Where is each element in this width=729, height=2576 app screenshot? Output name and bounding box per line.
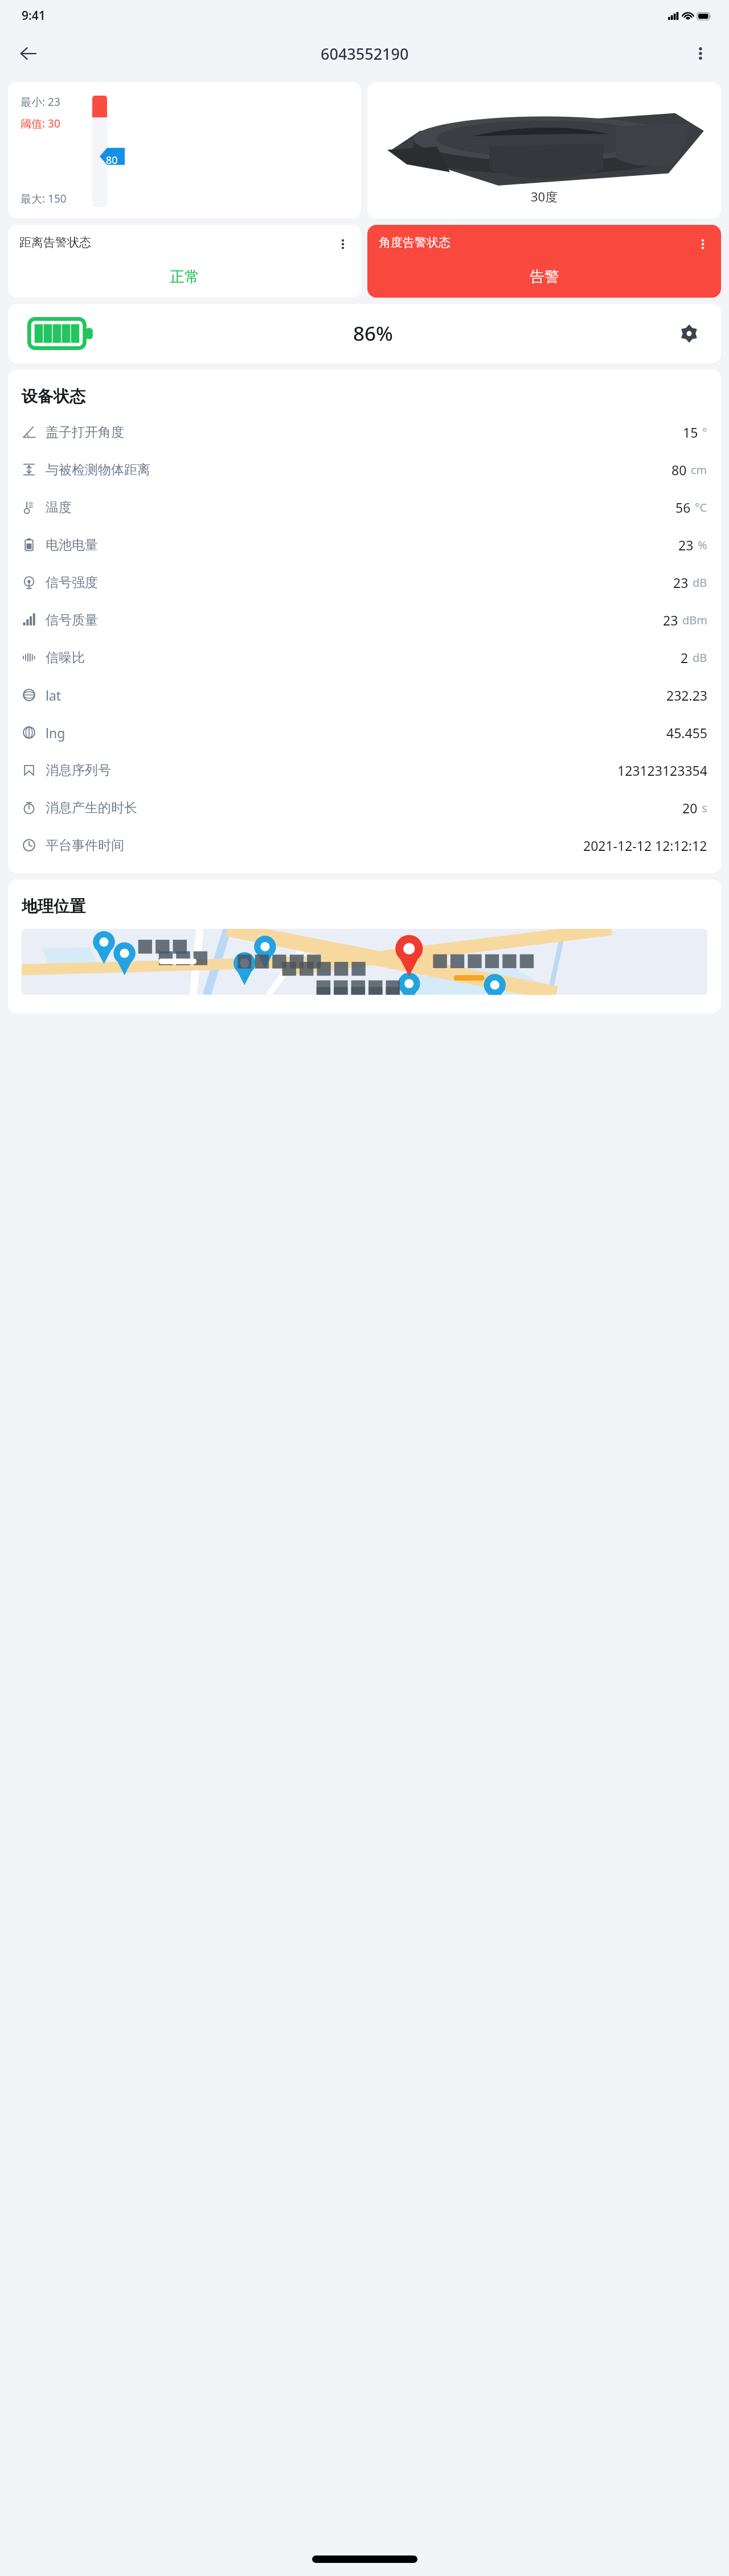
staticText: 信号强度	[46, 574, 98, 591]
button[interactable]: 信号质量	[22, 607, 707, 633]
staticText: 9:41	[22, 7, 46, 24]
button[interactable]: 消息序列号	[22, 757, 707, 783]
staticText: 45.455	[666, 724, 707, 742]
staticText: °	[702, 425, 707, 440]
staticText: dB	[693, 650, 707, 665]
staticText: 56	[675, 499, 691, 516]
staticText: 平台事件时间	[46, 837, 124, 854]
staticText: cm	[691, 462, 707, 478]
staticText: 温度	[46, 499, 72, 516]
staticText: lng	[46, 724, 65, 742]
button[interactable]: lng	[22, 719, 707, 746]
staticText: 阈值: 30	[21, 116, 60, 131]
staticText: 232.23	[666, 686, 707, 704]
button[interactable]: 角度告警状态	[367, 225, 721, 298]
staticText: dB	[693, 575, 707, 590]
button[interactable]: 86%	[8, 304, 721, 363]
staticText: 6043552190	[321, 43, 409, 64]
button[interactable]: More	[334, 235, 352, 253]
staticText: 电池电量	[46, 537, 98, 553]
button[interactable]: 消息产生的时长	[22, 795, 707, 821]
staticText: 正常	[170, 268, 199, 286]
staticText: °C	[695, 500, 707, 515]
button[interactable]: 盖子打开角度	[22, 419, 707, 445]
staticText: 消息序列号	[46, 762, 111, 779]
staticText: %	[698, 537, 707, 553]
staticText: 30度	[531, 188, 558, 205]
button[interactable]: 信号强度	[22, 569, 707, 595]
staticText: 地理位置	[22, 896, 85, 916]
staticText: 消息产生的时长	[46, 800, 137, 816]
button[interactable]: 与被检测物体距离	[22, 456, 707, 483]
button[interactable]: Back	[13, 38, 44, 69]
staticText: 设备状态	[22, 386, 85, 406]
staticText: 最小: 23	[21, 94, 60, 109]
button[interactable]: 距离告警状态	[8, 225, 361, 298]
staticText: lat	[46, 686, 62, 704]
staticText: 信噪比	[46, 649, 85, 666]
button[interactable]: lat	[22, 682, 707, 708]
staticText: 告警	[530, 268, 559, 286]
button[interactable]: 最小: 23	[8, 82, 361, 219]
staticText: s	[702, 800, 707, 816]
staticText: 23	[673, 574, 689, 591]
staticText: 盖子打开角度	[46, 424, 124, 441]
staticText: 角度告警状态	[379, 235, 694, 250]
button[interactable]: 信噪比	[22, 644, 707, 670]
staticText: 80	[106, 153, 118, 167]
button[interactable]: 30度	[367, 82, 721, 219]
button[interactable]: More	[694, 235, 712, 253]
staticText: 20	[682, 799, 698, 817]
button[interactable]: 地理位置	[22, 896, 707, 995]
staticText: 86%	[353, 320, 393, 347]
button[interactable]: Settings	[677, 321, 702, 346]
staticText: 最大: 150	[21, 191, 67, 206]
staticText: dBm	[682, 612, 707, 628]
staticText: 15	[683, 423, 698, 441]
staticText: 23	[663, 611, 678, 629]
staticText: 23	[678, 536, 694, 554]
staticText: 信号质量	[46, 612, 98, 628]
staticText: 与被检测物体距离	[46, 462, 150, 478]
button[interactable]: 平台事件时间	[22, 832, 707, 858]
button[interactable]: More options	[685, 38, 716, 69]
button[interactable]: 温度	[22, 494, 707, 520]
staticText: 123123123354	[617, 762, 707, 779]
staticText: 80	[671, 461, 687, 479]
staticText: 距离告警状态	[19, 235, 334, 250]
button[interactable]: 电池电量	[22, 532, 707, 558]
staticText: 2	[681, 649, 689, 666]
staticText: 2021-12-12 12:12:12	[583, 837, 707, 854]
